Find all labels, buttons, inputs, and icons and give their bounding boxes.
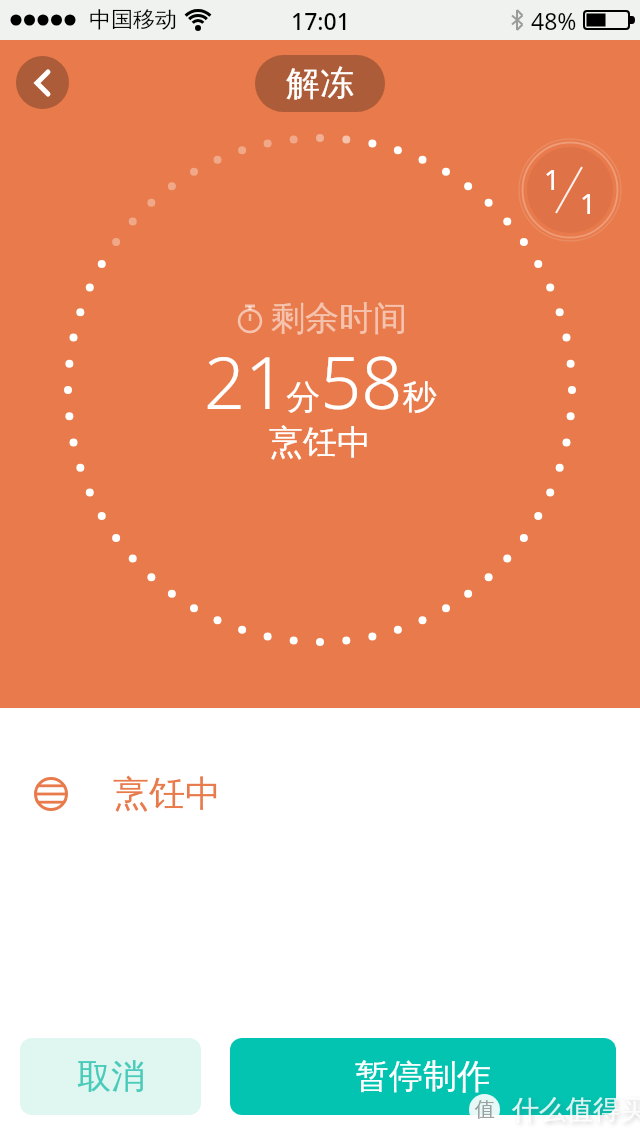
- staticText: 21分58秒: [204, 332, 437, 430]
- staticText: 剩余时间: [271, 297, 407, 340]
- button[interactable]: [16, 56, 69, 109]
- staticText: 暂停制作: [355, 1055, 491, 1098]
- button[interactable]: 解冻: [255, 55, 385, 112]
- staticText: 中国移动: [89, 6, 177, 34]
- staticText: 48%: [531, 5, 577, 36]
- staticText: 1: [544, 160, 561, 198]
- staticText: 烹饪中: [113, 771, 221, 816]
- staticText: 烹饪中: [269, 421, 371, 464]
- staticText: 值: [475, 1097, 495, 1122]
- staticText: 1: [580, 184, 597, 222]
- staticText: 解冻: [286, 62, 354, 105]
- staticText: 什么值得买: [512, 1093, 640, 1127]
- button[interactable]: 取消: [20, 1038, 201, 1115]
- staticText: 17:01: [291, 5, 350, 36]
- button[interactable]: 暂停制作: [230, 1038, 616, 1115]
- staticText: 取消: [77, 1055, 145, 1098]
